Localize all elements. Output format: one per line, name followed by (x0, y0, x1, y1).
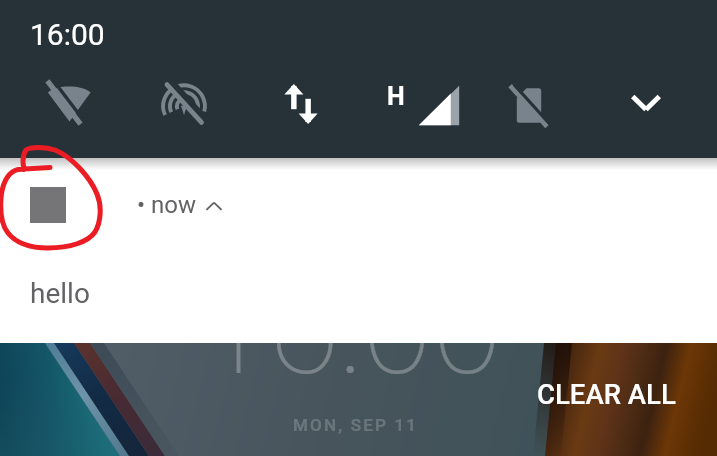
button[interactable]: Do not disturb (161, 82, 207, 126)
button[interactable]: CLEAR ALL (537, 378, 676, 410)
staticText: 16:00 (199, 254, 502, 404)
staticText: H (387, 82, 405, 111)
button[interactable]: No SIM card (508, 84, 550, 127)
staticText: hello (30, 277, 90, 310)
staticText: • now (137, 191, 197, 219)
button[interactable] (0, 158, 717, 343)
staticText: 16:00 (30, 17, 105, 52)
button[interactable]: Expand quick settings (629, 90, 663, 115)
staticText: MON, SEP 11 (293, 415, 419, 435)
button[interactable]: Mobile data activity (284, 84, 318, 124)
button[interactable]: Collapse notification (205, 200, 223, 212)
button[interactable]: Wi-Fi off (45, 80, 93, 126)
button[interactable]: Mobile signal (418, 85, 460, 127)
staticText: CLEAR ALL (537, 378, 676, 410)
